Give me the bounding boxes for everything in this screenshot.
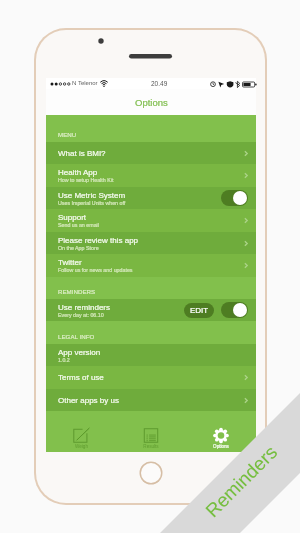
staticText: On the App Store [58,245,99,251]
staticText: Other apps by us [58,396,119,405]
staticText: EDIT [190,306,209,315]
staticText: Please review this app [58,236,139,245]
button[interactable]: Other apps by us [46,389,256,411]
staticText: Reminders [201,441,281,521]
staticText: LEGAL INFO [58,333,95,340]
button[interactable]: EDIT [184,303,214,318]
staticText: Twitter [58,258,82,267]
staticText: Options [135,97,168,108]
staticText: Follow us for news and updates [58,267,133,273]
staticText: Health App [58,168,98,177]
button[interactable]: Use reminders [46,299,256,321]
staticText: Uses Imperial Units when off [58,200,126,206]
staticText: Use reminders [58,303,111,312]
staticText: 20.49 [151,80,168,87]
staticText: N Telenor [72,80,98,87]
staticText: App version [58,348,101,357]
button[interactable]: App version [46,344,256,366]
button[interactable]: Toggle on [221,190,248,206]
staticText: Results [143,444,159,449]
staticText: Send us an email [58,222,99,228]
button[interactable]: Weigh [46,424,116,452]
button[interactable]: Terms of use [46,366,256,389]
staticText: Use Metric System [58,191,126,200]
staticText: MENU [58,131,77,138]
button[interactable]: Toggle on [221,302,248,318]
staticText: Weigh [75,444,88,449]
button[interactable]: What is BMI? [46,142,256,164]
button[interactable]: Use Metric System [46,187,256,209]
staticText: Options [213,444,229,449]
button[interactable]: Twitter [46,254,256,277]
staticText: How to setup Health Kit [58,177,114,183]
staticText: What is BMI? [58,149,106,158]
staticText: Support [58,213,87,222]
staticText: REMINDERS [58,288,96,295]
button[interactable]: Please review this app [46,232,256,254]
staticText: 1.0.2 [58,357,70,363]
button[interactable]: Options [186,424,256,452]
button[interactable]: Results [116,424,186,452]
staticText: Terms of use [58,373,104,382]
button[interactable]: Health App [46,164,256,187]
button[interactable]: Support [46,209,256,232]
staticText: Every day at: 06.10 [58,312,104,318]
